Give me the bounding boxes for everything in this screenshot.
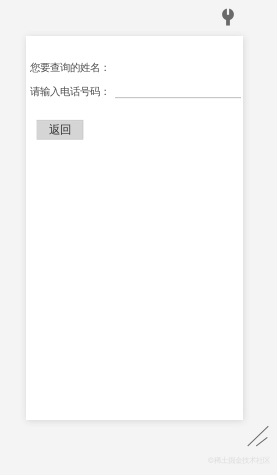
staticText: ©稀土掘金技术社区 [208,456,270,465]
staticText: 您要查询的姓名： [30,61,110,74]
button[interactable]: 返回 [37,120,83,139]
button[interactable]: Tools [217,5,239,29]
staticText: 返回 [49,122,71,137]
staticText: 请输入电话号码： [30,85,110,98]
